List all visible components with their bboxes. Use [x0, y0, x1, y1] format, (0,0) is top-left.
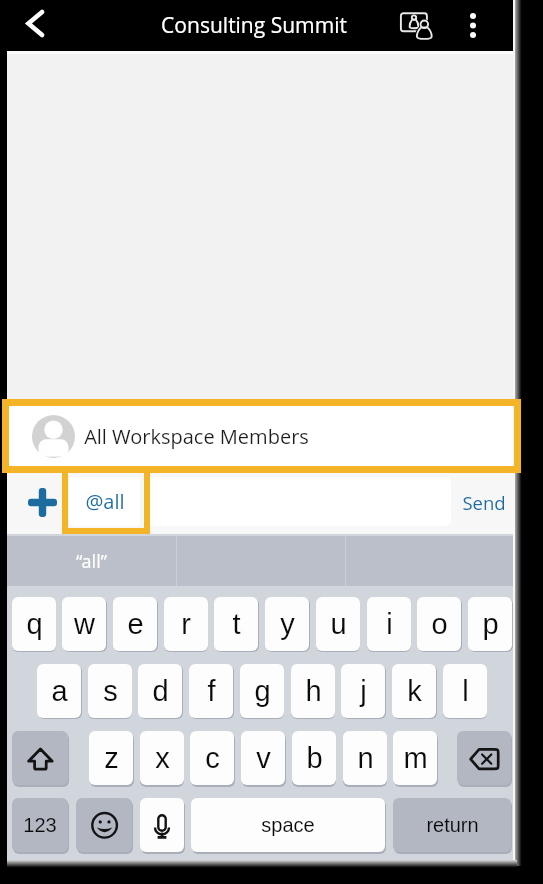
- button[interactable]: n: [343, 731, 387, 785]
- button[interactable]: 123: [12, 798, 68, 852]
- staticText: All Workspace Members: [84, 423, 309, 450]
- staticText: h: [305, 675, 322, 707]
- button[interactable]: @all: [69, 477, 140, 526]
- staticText: o: [431, 608, 448, 640]
- button[interactable]: v: [241, 731, 285, 785]
- button[interactable]: m: [393, 731, 437, 785]
- button[interactable]: f: [189, 664, 233, 718]
- button[interactable]: All Workspace Members: [7, 402, 514, 470]
- button[interactable]: r: [164, 597, 208, 651]
- staticText: j: [360, 675, 367, 707]
- staticText: 123: [23, 814, 57, 836]
- button[interactable]: y: [265, 597, 309, 651]
- staticText: r: [181, 608, 191, 640]
- button[interactable]: q: [12, 597, 56, 651]
- button[interactable]: More options: [451, 0, 497, 51]
- button[interactable]: d: [138, 664, 182, 718]
- button[interactable]: c: [190, 731, 234, 785]
- button[interactable]: j: [341, 664, 385, 718]
- button[interactable]: Emoji keyboard: [76, 798, 132, 852]
- button[interactable]: e: [113, 597, 157, 651]
- staticText: f: [207, 675, 216, 707]
- staticText: k: [407, 675, 422, 707]
- button[interactable]: p: [468, 597, 512, 651]
- button[interactable]: space: [191, 798, 385, 852]
- staticText: u: [330, 608, 347, 640]
- staticText: @all: [85, 488, 125, 515]
- button[interactable]: b: [292, 731, 336, 785]
- button[interactable]: return: [393, 798, 511, 852]
- staticText: e: [127, 608, 144, 640]
- button[interactable]: Back: [11, 0, 59, 51]
- button[interactable]: a: [37, 664, 81, 718]
- button[interactable]: u: [316, 597, 360, 651]
- button[interactable]: s: [88, 664, 132, 718]
- button[interactable]: Shift: [12, 731, 68, 785]
- button[interactable]: l: [443, 664, 487, 718]
- staticText: space: [261, 814, 315, 836]
- button[interactable]: h: [291, 664, 335, 718]
- staticText: y: [280, 608, 295, 640]
- button[interactable]: [143, 477, 451, 526]
- button[interactable]: t: [214, 597, 258, 651]
- staticText: v: [256, 742, 271, 774]
- staticText: p: [482, 608, 499, 640]
- staticText: s: [103, 675, 118, 707]
- staticText: return: [426, 814, 479, 836]
- button[interactable]: o: [417, 597, 461, 651]
- staticText: x: [155, 742, 170, 774]
- staticText: Consulting Summit: [161, 11, 347, 40]
- button[interactable]: Add attachment: [15, 470, 69, 534]
- button[interactable]: x: [140, 731, 184, 785]
- staticText: q: [26, 608, 43, 640]
- button[interactable]: w: [62, 597, 106, 651]
- staticText: a: [51, 675, 68, 707]
- staticText: n: [357, 742, 374, 774]
- staticText: d: [152, 675, 169, 707]
- button[interactable]: Voice input: [140, 798, 184, 852]
- staticText: Send: [462, 490, 506, 515]
- button[interactable]: z: [89, 731, 133, 785]
- staticText: i: [386, 608, 393, 640]
- staticText: m: [403, 742, 428, 774]
- button[interactable]: i: [367, 597, 411, 651]
- staticText: b: [306, 742, 323, 774]
- button[interactable]: [346, 536, 514, 586]
- button[interactable]: k: [392, 664, 436, 718]
- staticText: w: [74, 608, 95, 640]
- button[interactable]: Send: [455, 470, 513, 534]
- staticText: g: [254, 675, 271, 707]
- staticText: t: [232, 608, 241, 640]
- button[interactable]: “all”: [7, 536, 176, 586]
- button[interactable]: Participants: [393, 0, 443, 51]
- staticText: “all”: [76, 549, 107, 574]
- staticText: l: [462, 675, 469, 707]
- staticText: c: [205, 742, 220, 774]
- button[interactable]: Backspace: [457, 731, 511, 785]
- button[interactable]: g: [240, 664, 284, 718]
- staticText: z: [104, 742, 119, 774]
